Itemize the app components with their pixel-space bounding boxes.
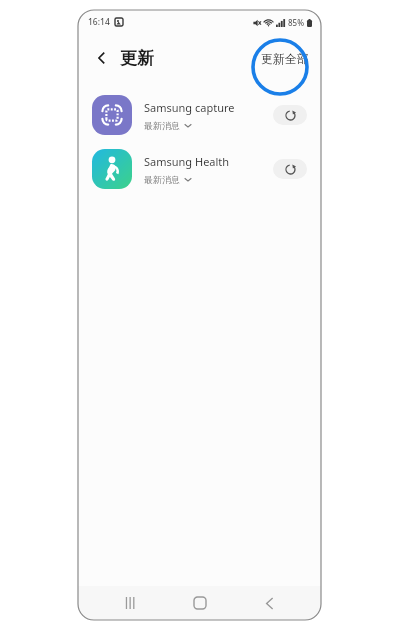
button[interactable]: Back bbox=[88, 44, 116, 72]
staticText: 85% bbox=[288, 17, 304, 28]
button[interactable]: Home bbox=[183, 586, 217, 620]
staticText: 更新全部 bbox=[261, 51, 309, 66]
button[interactable]: Back bbox=[252, 586, 286, 620]
button[interactable]: Samsung capture bbox=[78, 88, 321, 142]
button[interactable]: Recents bbox=[113, 586, 147, 620]
staticText: Samsung Health bbox=[144, 154, 230, 169]
button[interactable]: 更新全部 bbox=[259, 47, 311, 70]
staticText: 最新消息 bbox=[144, 120, 180, 131]
staticText: 更新 bbox=[120, 48, 154, 69]
button[interactable]: Samsung Health bbox=[78, 142, 321, 196]
staticText: Samsung capture bbox=[144, 100, 235, 115]
button[interactable]: Update bbox=[273, 159, 307, 179]
button[interactable]: Update bbox=[273, 105, 307, 125]
button[interactable]: 最新消息 bbox=[144, 174, 192, 185]
staticText: 最新消息 bbox=[144, 174, 180, 185]
staticText: 16:14 bbox=[88, 16, 110, 28]
button[interactable]: 最新消息 bbox=[144, 120, 192, 131]
